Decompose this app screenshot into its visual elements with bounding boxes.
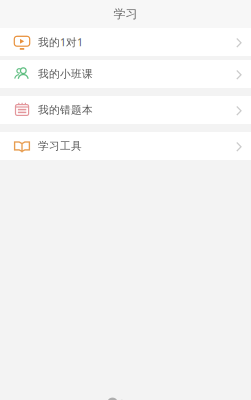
- button[interactable]: 我的1对1: [0, 28, 251, 56]
- staticText: 我的错题本: [38, 103, 93, 116]
- button[interactable]: Tab: [112, 397, 138, 400]
- button[interactable]: 我的错题本: [0, 96, 251, 124]
- staticText: 我的小班课: [38, 67, 93, 80]
- staticText: 我的1对1: [38, 35, 83, 49]
- button[interactable]: 我的小班课: [0, 60, 251, 88]
- staticText: 学习: [113, 7, 137, 21]
- button[interactable]: 学习工具: [0, 132, 251, 160]
- staticText: 学习工具: [38, 139, 82, 152]
